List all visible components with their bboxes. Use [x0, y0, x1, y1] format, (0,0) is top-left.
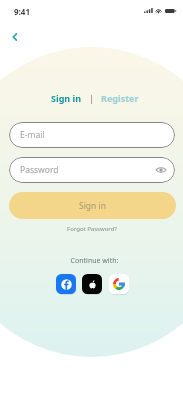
staticText: Register [101, 92, 139, 104]
button[interactable]: Sign in with Google [109, 274, 129, 294]
button[interactable]: Sign in [9, 192, 176, 219]
staticText: 9:41 [14, 6, 30, 17]
button[interactable]: Back [4, 26, 26, 48]
button[interactable]: Sign in with Facebook [56, 274, 76, 294]
button[interactable]: Sign in [49, 89, 84, 107]
button[interactable]: Sign in with Apple [82, 274, 102, 294]
button[interactable]: Show password [154, 163, 168, 177]
staticText: Sign in [51, 92, 82, 104]
staticText: Continue with: [3, 256, 183, 266]
staticText: Forgot Password? [67, 225, 117, 233]
button[interactable]: Password [9, 157, 175, 183]
staticText: | [89, 92, 94, 104]
staticText: Sign in [79, 200, 106, 212]
staticText: E-mail [20, 129, 45, 141]
button[interactable]: Register [99, 89, 141, 107]
button[interactable]: E-mail [9, 122, 175, 148]
staticText: Password [20, 164, 59, 176]
button[interactable]: Forgot Password? [0, 225, 183, 233]
